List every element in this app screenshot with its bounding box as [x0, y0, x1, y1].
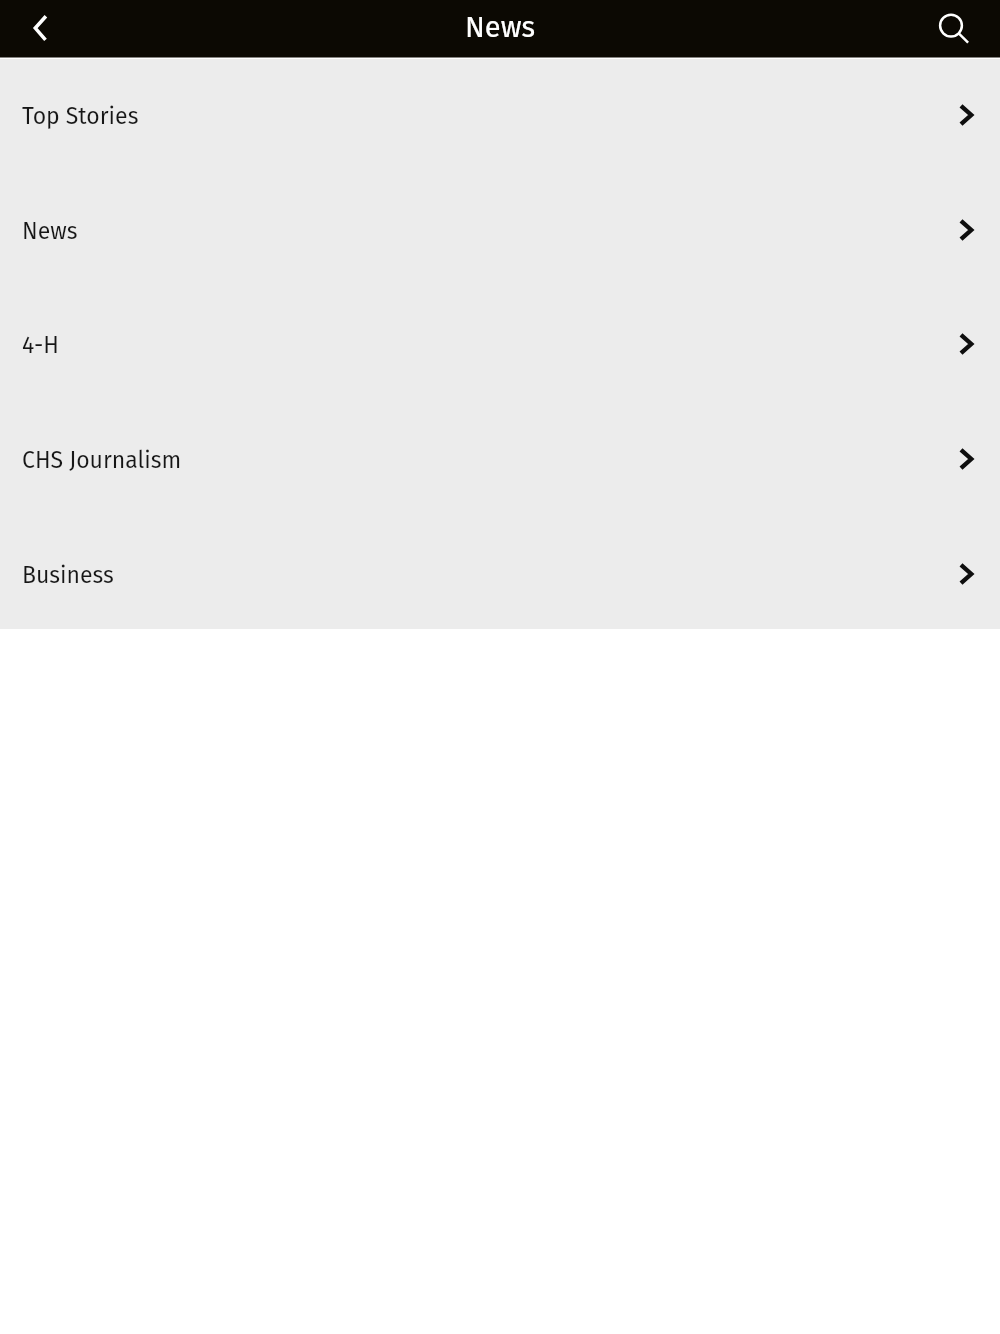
button[interactable]: News	[0, 172, 1000, 287]
staticText: News	[465, 10, 535, 45]
staticText: Business	[22, 561, 114, 589]
button[interactable]: CHS Journalism	[0, 401, 1000, 516]
button[interactable]: 4-H	[0, 286, 1000, 401]
button[interactable]: Back	[0, 0, 72, 58]
button[interactable]: Top Stories	[0, 57, 1000, 172]
staticText: Top Stories	[22, 102, 139, 130]
button[interactable]: Business	[0, 516, 1000, 631]
staticText: CHS Journalism	[22, 446, 182, 474]
button[interactable]: Search	[912, 0, 1000, 58]
staticText: 4-H	[22, 331, 59, 359]
staticText: News	[22, 217, 78, 245]
